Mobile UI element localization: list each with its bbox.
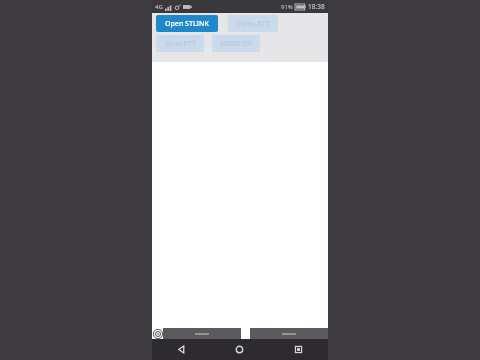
button[interactable]: Open BTT	[228, 15, 278, 32]
staticText: 18:38	[308, 2, 325, 11]
button[interactable]: Next	[250, 328, 328, 339]
button[interactable]: MIRIS ON	[212, 35, 260, 52]
button[interactable]: Previous	[163, 328, 241, 339]
staticText: 91%	[281, 3, 293, 11]
button[interactable]: Back	[152, 339, 210, 360]
button[interactable]: Assistive menu	[153, 329, 163, 339]
staticText: Open BTT	[237, 19, 270, 29]
button[interactable]: Open STLINK	[156, 15, 218, 32]
button[interactable]: Recent apps	[269, 339, 328, 360]
staticText: Open STLINK	[165, 19, 209, 29]
button[interactable]: Send PTT	[156, 35, 204, 52]
staticText: 4G	[155, 3, 163, 11]
staticText: MIRIS ON	[220, 39, 253, 49]
staticText: Send PTT	[165, 39, 196, 49]
button[interactable]: Home	[210, 339, 269, 360]
